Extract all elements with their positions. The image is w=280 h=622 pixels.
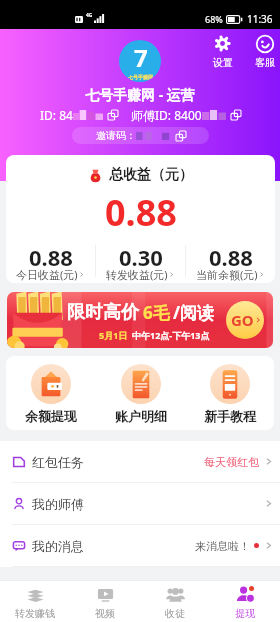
staticText: 设置 <box>213 56 233 69</box>
staticText: GO <box>231 310 254 330</box>
staticText: 中午12点-下午13点 <box>132 329 210 341</box>
staticText: 0.88 <box>29 242 73 272</box>
staticText: 我的消息 <box>32 538 84 554</box>
staticText: 邀请码： <box>96 129 136 142</box>
button[interactable]: 设置 <box>209 35 236 69</box>
staticText: 我的师傅 <box>32 496 84 512</box>
staticText: 0.88 <box>209 242 253 272</box>
staticText: 来消息啦！ <box>195 539 250 553</box>
button[interactable]: 视频 <box>70 580 140 622</box>
staticText: 7 <box>134 41 148 74</box>
staticText: 每天领红包 <box>204 455 259 469</box>
staticText: 七号手赚网 - 运营 <box>85 85 195 104</box>
staticText: 七号手赚网 <box>128 74 153 80</box>
staticText: 今日收益(元) <box>16 267 78 282</box>
staticText: 转发收益(元) <box>106 267 168 282</box>
staticText: 师傅ID: 8400 <box>131 107 202 123</box>
staticText: 收徒 <box>165 607 185 620</box>
button[interactable]: 我的消息 <box>0 525 280 566</box>
button[interactable]: 转发赚钱 <box>0 580 70 622</box>
staticText: 68% <box>205 13 223 25</box>
button[interactable]: 邀请码： <box>72 127 209 144</box>
staticText: 11:36 <box>247 12 273 26</box>
button[interactable]: 红包任务 <box>0 441 280 482</box>
staticText: 6毛 <box>143 301 170 324</box>
button[interactable]: 客服 <box>251 35 278 69</box>
button[interactable]: 余额提现 <box>6 356 96 430</box>
staticText: 4G <box>86 12 93 19</box>
staticText: 红包任务 <box>32 454 84 470</box>
staticText: /阅读 <box>173 301 215 324</box>
staticText: 0.88 <box>105 188 177 237</box>
button[interactable]: 我的师傅 <box>0 483 280 524</box>
button[interactable]: 0.88 <box>6 243 95 283</box>
staticText: 余额提现 <box>25 408 77 424</box>
staticText: 总收益（元） <box>109 166 193 184</box>
button[interactable]: 0.88 <box>186 243 275 283</box>
staticText: 当前余额(元) <box>196 267 258 282</box>
staticText: 客服 <box>255 56 275 69</box>
staticText: ID: 84 <box>40 107 73 123</box>
button[interactable]: 限时高价 <box>7 292 273 348</box>
button[interactable]: 新手教程 <box>185 356 274 430</box>
staticText: 视频 <box>95 607 115 620</box>
button[interactable]: 0.30 <box>96 243 185 283</box>
staticText: 限时高价 <box>67 301 139 324</box>
staticText: 转发赚钱 <box>15 607 55 620</box>
staticText: 账户明细 <box>115 408 167 424</box>
staticText: 提现 <box>235 607 255 620</box>
button[interactable]: 账户明细 <box>96 356 185 430</box>
staticText: 0.30 <box>119 242 163 272</box>
staticText: 5月1日 <box>99 329 128 341</box>
staticText: 新手教程 <box>204 408 256 424</box>
button[interactable]: 提现 <box>210 580 280 622</box>
button[interactable]: 收徒 <box>140 580 210 622</box>
